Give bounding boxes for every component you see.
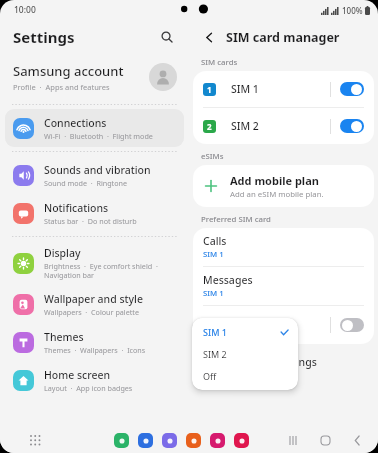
staticText: Status bar · Do not disturb	[44, 216, 137, 226]
button[interactable]: Off	[340, 318, 364, 332]
staticText: Off	[203, 370, 217, 382]
staticText: SIM 2	[231, 119, 330, 133]
staticText: Layout · App icon badges	[44, 383, 133, 393]
staticText: Settings	[13, 27, 75, 47]
button[interactable]: Notes	[186, 433, 201, 448]
staticText: Wallpapers · Colour palette	[44, 307, 139, 317]
button[interactable]: Recents	[286, 433, 300, 447]
staticText: Notifications	[44, 201, 109, 215]
staticText: SIM cards	[201, 57, 238, 68]
staticText: SIM 1	[231, 82, 330, 96]
staticText: Mobile data	[203, 318, 263, 332]
staticText: Wallpaper and style	[44, 292, 143, 306]
button[interactable]: Home screen	[5, 361, 184, 399]
button[interactable]: Display	[5, 241, 184, 285]
button[interactable]: Themes	[5, 323, 184, 361]
button[interactable]: Connections	[5, 109, 184, 147]
staticText: Brightness · Eye comfort shield · Naviga…	[44, 261, 158, 281]
button[interactable]: Add mobile plan	[193, 165, 374, 207]
staticText: SIM 2	[203, 348, 227, 360]
button[interactable]: Back	[199, 27, 219, 47]
staticText: Themes · Wallpapers · Icons	[44, 345, 146, 355]
button[interactable]: SIM 2	[192, 343, 298, 365]
button[interactable]: Settings	[210, 433, 225, 448]
button[interactable]: Notifications	[5, 194, 184, 232]
button[interactable]: Search	[155, 25, 179, 49]
button[interactable]: Gallery	[234, 433, 249, 448]
staticText: SIM 1	[203, 249, 224, 260]
button[interactable]: SIM 1	[192, 321, 298, 343]
staticText: Home screen	[44, 368, 111, 382]
button[interactable]: Messages	[138, 433, 153, 448]
button[interactable]: Phone	[114, 433, 129, 448]
staticText: More SIM card settings	[201, 355, 317, 369]
button[interactable]: Messages	[193, 267, 374, 305]
button[interactable]: On	[340, 119, 364, 133]
staticText: SIM card manager	[226, 29, 340, 46]
staticText: eSIMs	[201, 151, 224, 162]
button[interactable]: Back	[350, 433, 364, 447]
staticText: Themes	[44, 330, 84, 344]
staticText: Wi-Fi · Bluetooth · Flight mode	[44, 131, 153, 141]
staticText: Add mobile plan	[230, 173, 319, 188]
staticText: Messages	[203, 273, 253, 287]
staticText: Calls	[203, 234, 227, 248]
staticText: 2	[207, 121, 212, 132]
staticText: SIM 1	[203, 326, 280, 338]
staticText: 1	[207, 84, 212, 95]
staticText: Samsung account	[13, 62, 124, 80]
staticText: Connections	[44, 116, 107, 130]
button[interactable]: Wallpaper and style	[5, 285, 184, 323]
button[interactable]: 1	[193, 71, 374, 107]
staticText: Add an eSIM mobile plan.	[230, 189, 324, 200]
staticText: Sound mode · Ringtone	[44, 178, 128, 188]
button[interactable]: Sounds and vibration	[5, 156, 184, 194]
staticText: Profile · Apps and features	[13, 82, 110, 92]
button[interactable]: More SIM card settings	[189, 350, 378, 374]
staticText: 100%	[342, 5, 363, 16]
button[interactable]: Internet	[162, 433, 177, 448]
button[interactable]: Apps	[27, 432, 43, 448]
button[interactable]: On	[340, 82, 364, 96]
staticText: 10:00	[14, 4, 36, 16]
button[interactable]: Mobile data	[193, 306, 374, 344]
button[interactable]: Home	[318, 433, 332, 447]
button[interactable]: Samsung account	[0, 54, 189, 100]
button[interactable]: Off	[192, 365, 298, 387]
staticText: Sounds and vibration	[44, 163, 151, 177]
button[interactable]: 2	[193, 108, 374, 144]
button[interactable]: Calls	[193, 228, 374, 266]
staticText: SIM 1	[203, 288, 224, 299]
staticText: Preferred SIM card	[201, 214, 271, 225]
staticText: Display	[44, 246, 81, 260]
